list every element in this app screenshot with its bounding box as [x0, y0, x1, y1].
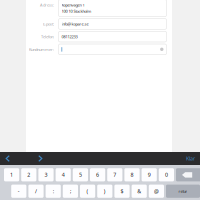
staticText: &: [137, 188, 141, 195]
button[interactable]: Adress:: [26, 0, 166, 17]
staticText: 1: [10, 171, 13, 178]
staticText: 3: [44, 171, 47, 178]
button[interactable]: Next field: [33, 152, 48, 165]
staticText: 8: [130, 171, 133, 178]
button[interactable]: ): [97, 185, 112, 198]
staticText: Klar: [186, 155, 195, 162]
staticText: $: [120, 188, 123, 195]
button[interactable]: Klar: [186, 152, 200, 165]
staticText: 08112233: [61, 34, 77, 39]
staticText: -: [18, 188, 20, 195]
staticText: :: [53, 188, 54, 195]
staticText: 100 10 Stockholm: [61, 8, 91, 14]
button[interactable]: 6: [90, 168, 105, 181]
staticText: 2: [27, 171, 30, 178]
button[interactable]: -: [11, 185, 26, 198]
button[interactable]: (: [80, 185, 95, 198]
button[interactable]: 2: [21, 168, 36, 181]
staticText: info@kopare.se: [61, 21, 88, 27]
staticText: @: [154, 188, 159, 195]
button[interactable]: Kundnummer:: [26, 44, 166, 55]
button[interactable]: 0: [159, 168, 174, 181]
button[interactable]: 9: [142, 168, 157, 181]
button[interactable]: @: [149, 185, 164, 198]
staticText: ;: [70, 188, 71, 195]
button[interactable]: 7: [107, 168, 122, 181]
button[interactable]: E-post:: [26, 19, 166, 29]
button[interactable]: retur: [166, 185, 200, 198]
staticText: Kundnummer:: [29, 47, 54, 52]
staticText: 6: [96, 171, 99, 178]
staticText: retur: [178, 188, 187, 194]
button[interactable]: :: [46, 185, 61, 198]
staticText: 9: [148, 171, 151, 178]
button[interactable]: 3: [38, 168, 54, 181]
staticText: 5: [79, 171, 82, 178]
button[interactable]: 5: [73, 168, 88, 181]
button[interactable]: &: [132, 185, 147, 198]
staticText: 0: [165, 171, 168, 178]
button[interactable]: 4: [56, 168, 71, 181]
button[interactable]: Previous field: [0, 152, 15, 165]
button[interactable]: Delete: [176, 168, 200, 181]
staticText: Adress:: [40, 2, 54, 8]
staticText: Köpenvägen 1: [61, 2, 84, 8]
staticText: E-post:: [43, 21, 54, 27]
button[interactable]: 1: [4, 168, 19, 181]
staticText: 4: [62, 171, 65, 178]
button[interactable]: ;: [63, 185, 78, 198]
button[interactable]: $: [114, 185, 130, 198]
staticText: 7: [113, 171, 116, 178]
staticText: (: [87, 188, 89, 195]
button[interactable]: Telefon:: [26, 31, 166, 42]
staticText: Telefon:: [41, 34, 54, 39]
staticText: ): [104, 188, 106, 195]
button[interactable]: /: [28, 185, 44, 198]
button[interactable]: 8: [124, 168, 140, 181]
staticText: /: [35, 188, 37, 195]
